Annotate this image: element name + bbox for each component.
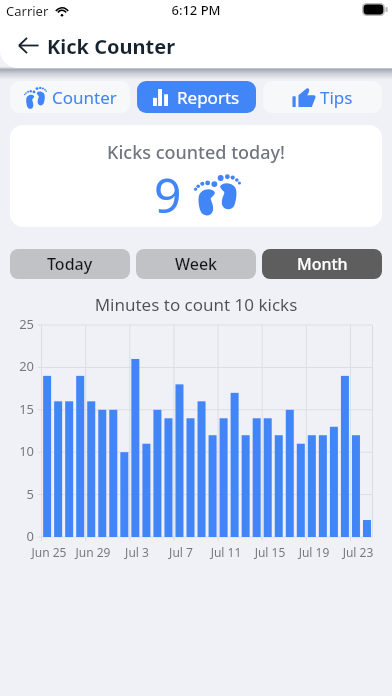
staticText: Jul 11 <box>198 544 254 560</box>
staticText: Reports <box>177 86 240 109</box>
button[interactable]: Week <box>136 249 256 279</box>
staticText: 6:12 PM <box>0 1 392 19</box>
button[interactable]: Month <box>262 249 382 279</box>
button[interactable]: Back <box>14 31 42 59</box>
staticText: 25 <box>0 315 34 333</box>
button[interactable]: Tips <box>263 81 382 113</box>
button[interactable]: Counter <box>10 81 130 113</box>
staticText: 0 <box>0 527 34 545</box>
staticText: Jul 19 <box>286 544 342 560</box>
staticText: Today <box>47 253 93 275</box>
staticText: 5 <box>0 485 34 503</box>
staticText: Kicks counted today! <box>10 140 382 165</box>
staticText: 15 <box>0 400 34 418</box>
staticText: Counter <box>52 86 117 109</box>
button[interactable]: Reports <box>137 81 256 113</box>
staticText: 10 <box>0 442 34 460</box>
staticText: Jul 7 <box>153 544 209 560</box>
staticText: Tips <box>320 86 353 109</box>
staticText: Carrier <box>6 2 49 20</box>
staticText: Jul 23 <box>330 544 386 560</box>
staticText: Month <box>297 253 348 275</box>
staticText: Minutes to count 10 kicks <box>0 293 392 316</box>
staticText: Jun 29 <box>65 544 121 560</box>
button[interactable]: Today <box>10 249 130 279</box>
staticText: Week <box>175 253 218 275</box>
staticText: Jul 3 <box>109 544 165 560</box>
staticText: Jul 15 <box>242 544 298 560</box>
staticText: 20 <box>0 357 34 375</box>
staticText: 9 <box>154 162 182 227</box>
staticText: Jun 25 <box>21 544 77 560</box>
staticText: Kick Counter <box>47 33 176 60</box>
